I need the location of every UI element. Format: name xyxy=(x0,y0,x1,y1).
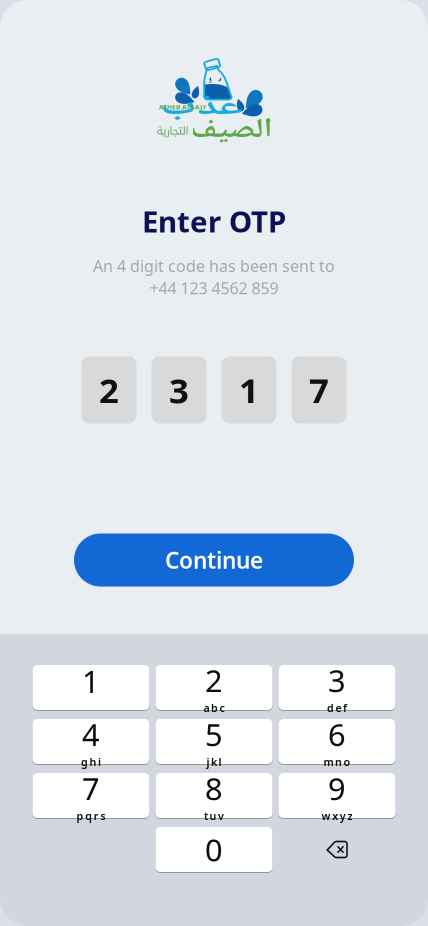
button[interactable]: Continue xyxy=(74,533,354,586)
staticText: tuv xyxy=(204,809,224,823)
staticText: ghi xyxy=(81,755,101,769)
staticText: wxyz xyxy=(322,809,352,823)
staticText: +44 123 4562 859 xyxy=(149,277,278,299)
staticText: Enter OTP xyxy=(142,201,286,240)
staticText: 0 xyxy=(205,829,223,870)
button[interactable]: 1 xyxy=(32,665,149,710)
button[interactable]: 4 xyxy=(32,719,149,764)
button[interactable]: 0 xyxy=(155,827,272,872)
staticText: 5 xyxy=(205,714,223,755)
staticText: 7 xyxy=(309,367,329,413)
button[interactable]: 2 xyxy=(155,665,272,710)
button[interactable]: 3 xyxy=(278,665,395,710)
staticText: An 4 digit code has been sent to xyxy=(93,255,335,276)
staticText: jkl xyxy=(206,755,222,769)
button[interactable]: 7 xyxy=(32,773,149,818)
staticText: 2 xyxy=(99,367,119,413)
staticText: 9 xyxy=(328,768,346,809)
staticText: عذب xyxy=(168,77,233,139)
staticText: pqrs xyxy=(77,809,105,823)
button[interactable]: 9 xyxy=(278,773,395,818)
staticText: 7 xyxy=(82,768,100,809)
staticText: 6 xyxy=(328,714,346,755)
button[interactable]: 5 xyxy=(155,719,272,764)
staticText: mno xyxy=(323,755,351,769)
button[interactable]: Delete xyxy=(278,827,395,872)
staticText: 1 xyxy=(239,367,259,413)
staticText: 4 xyxy=(82,714,100,755)
button[interactable]: 6 xyxy=(278,719,395,764)
staticText: ATHEB ALSAIF xyxy=(159,103,207,111)
staticText: def xyxy=(327,701,347,715)
staticText: abc xyxy=(203,701,225,715)
button[interactable]: 8 xyxy=(155,773,272,818)
staticText: 3 xyxy=(169,367,189,413)
staticText: التجارية xyxy=(156,121,188,141)
staticText: الصيف xyxy=(190,104,272,158)
staticText: Continue xyxy=(165,545,263,575)
staticText: 8 xyxy=(205,768,223,809)
staticText: 1 xyxy=(82,661,100,701)
staticText: 2 xyxy=(205,660,223,701)
staticText: 3 xyxy=(328,660,346,701)
